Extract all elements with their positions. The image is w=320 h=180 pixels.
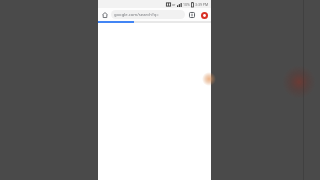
staticText: google.com/search?q= <box>114 12 159 18</box>
staticText: 10% <box>183 2 190 7</box>
button[interactable]: Stop recording <box>199 10 209 20</box>
button[interactable]: Home <box>100 10 110 20</box>
button[interactable]: google.com/search?q= <box>111 10 185 19</box>
staticText: 3:39 PM <box>195 2 209 7</box>
button[interactable]: Tabs <box>187 10 197 20</box>
staticText: or <box>172 2 176 7</box>
